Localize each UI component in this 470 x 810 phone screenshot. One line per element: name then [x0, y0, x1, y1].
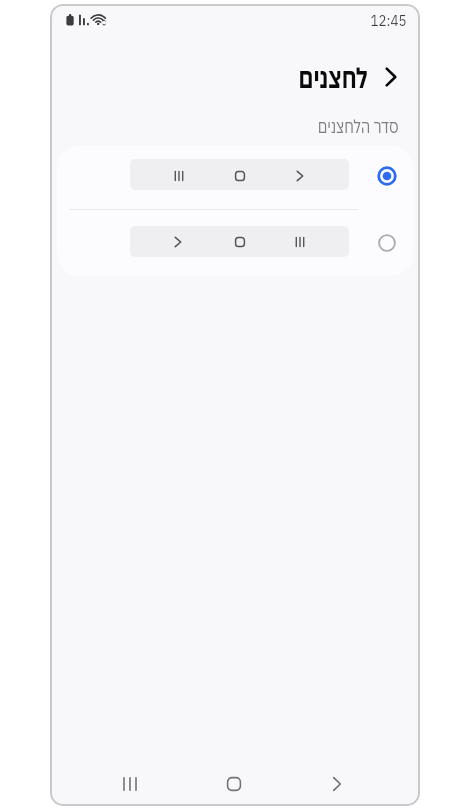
- staticText: 12:45: [370, 11, 407, 31]
- button[interactable]: [369, 57, 413, 97]
- button[interactable]: [90, 754, 170, 806]
- button[interactable]: [193, 754, 273, 806]
- button[interactable]: [57, 146, 413, 209]
- staticText: לחצנים: [299, 59, 368, 95]
- button[interactable]: [296, 754, 376, 806]
- button[interactable]: [57, 213, 413, 276]
- staticText: סדר הלחצנים: [318, 115, 399, 138]
